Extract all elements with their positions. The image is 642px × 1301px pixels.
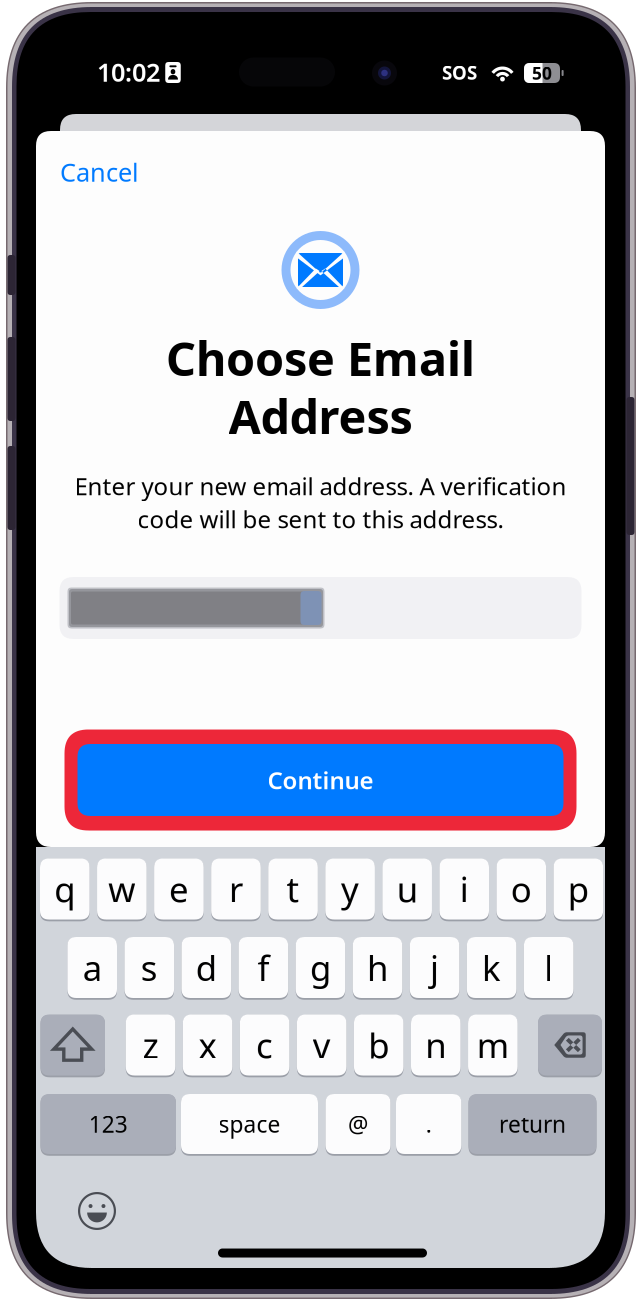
staticText: @ xyxy=(348,1109,368,1139)
button[interactable]: @ xyxy=(325,1094,390,1154)
button[interactable]: Emoji keyboard xyxy=(78,1192,116,1230)
staticText: . xyxy=(426,1109,432,1139)
button[interactable]: return xyxy=(468,1094,596,1154)
staticText: SOS xyxy=(442,60,477,85)
button[interactable]: p xyxy=(553,858,603,919)
button[interactable]: s xyxy=(124,937,174,998)
staticText: space xyxy=(218,1109,280,1139)
staticText: 10:02 xyxy=(97,55,160,89)
staticText: a xyxy=(83,944,102,990)
staticText: Continue xyxy=(267,764,373,796)
button[interactable]: l xyxy=(524,937,573,998)
staticText: d xyxy=(196,944,217,990)
staticText: b xyxy=(368,1022,389,1068)
button[interactable]: Shift xyxy=(40,1014,105,1075)
staticText: i xyxy=(460,866,469,912)
staticText: f xyxy=(257,944,269,990)
button[interactable]: h xyxy=(353,937,402,998)
staticText: c xyxy=(256,1022,273,1068)
staticText: return xyxy=(499,1109,566,1139)
staticText: s xyxy=(141,944,158,990)
staticText: Enter your new email address. A verifica… xyxy=(74,470,566,502)
button[interactable]: k xyxy=(467,937,516,998)
button[interactable]: e xyxy=(154,858,204,919)
staticText: o xyxy=(511,866,532,912)
staticText: v xyxy=(313,1022,331,1068)
button[interactable]: a xyxy=(67,937,117,998)
staticText: p xyxy=(568,866,589,912)
button[interactable]: d xyxy=(181,937,231,998)
button[interactable]: space xyxy=(181,1094,318,1154)
button[interactable]: n xyxy=(411,1014,461,1075)
staticText: t xyxy=(286,866,299,912)
button[interactable]: b xyxy=(354,1014,403,1075)
button[interactable]: g xyxy=(296,937,345,998)
button[interactable]: z xyxy=(126,1014,175,1075)
staticText: code will be sent to this address. xyxy=(137,503,503,535)
button[interactable]: 123 xyxy=(40,1094,176,1154)
staticText: Choose Email xyxy=(166,327,475,389)
staticText: 50 xyxy=(532,61,552,84)
button[interactable]: t xyxy=(268,858,318,919)
staticText: Cancel xyxy=(60,155,139,189)
staticText: l xyxy=(544,944,553,990)
button[interactable]: Continue xyxy=(64,729,576,830)
staticText: y xyxy=(341,866,359,912)
staticText: g xyxy=(310,944,331,990)
button[interactable]: m xyxy=(468,1014,518,1075)
button[interactable]: x xyxy=(183,1014,232,1075)
button[interactable]: i xyxy=(439,858,489,919)
staticText: w xyxy=(108,866,135,912)
button[interactable]: . xyxy=(396,1094,461,1154)
button[interactable]: o xyxy=(496,858,546,919)
staticText: u xyxy=(397,866,418,912)
staticText: j xyxy=(430,944,439,990)
staticText: m xyxy=(477,1022,509,1068)
staticText: z xyxy=(142,1022,158,1068)
button[interactable]: u xyxy=(382,858,432,919)
staticText: n xyxy=(425,1022,446,1068)
button[interactable]: y xyxy=(325,858,375,919)
button[interactable]: w xyxy=(97,858,147,919)
staticText: q xyxy=(54,866,75,912)
button[interactable]: v xyxy=(297,1014,346,1075)
button[interactable]: Cancel xyxy=(60,150,150,194)
button[interactable]: f xyxy=(239,937,288,998)
staticText: 123 xyxy=(89,1109,128,1139)
staticText: x xyxy=(199,1022,217,1068)
staticText: r xyxy=(229,866,243,912)
button[interactable]: Delete xyxy=(538,1014,602,1075)
button[interactable]: q xyxy=(40,858,90,919)
staticText: e xyxy=(169,866,189,912)
staticText: h xyxy=(367,944,388,990)
button[interactable]: r xyxy=(211,858,261,919)
staticText: k xyxy=(482,944,501,990)
staticText: Address xyxy=(228,385,412,447)
button[interactable]: c xyxy=(240,1014,289,1075)
button[interactable]: j xyxy=(410,937,459,998)
